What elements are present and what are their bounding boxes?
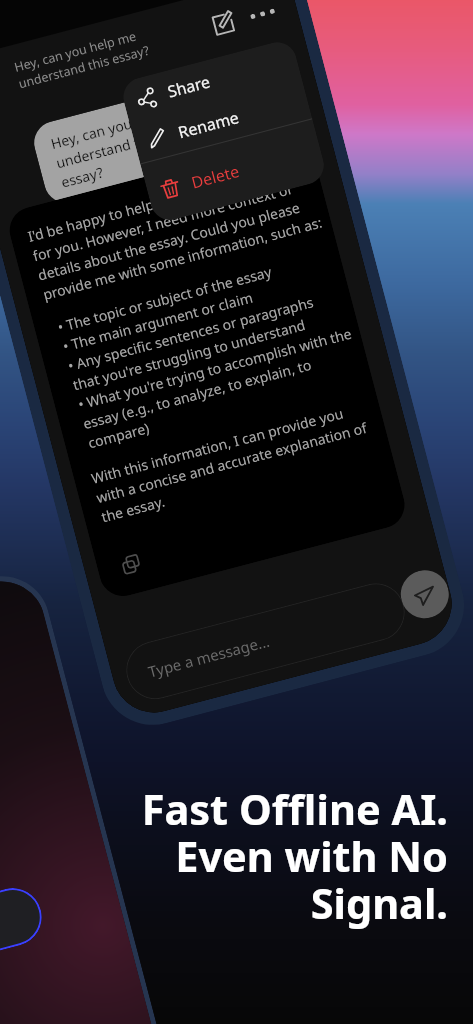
button[interactable]: Copy (117, 550, 144, 577)
staticText: Fast Offline AI. Even with No Signal. (141, 781, 448, 931)
button[interactable]: Rename (130, 79, 312, 163)
staticText: With this information, I can provide you… (89, 396, 384, 526)
button[interactable]: Share (119, 38, 302, 124)
staticText: Hey, can you help me understand this ess… (12, 25, 151, 91)
button[interactable]: More options (240, 0, 284, 36)
staticText: Hey, can you help me understand this ess… (49, 99, 200, 192)
button[interactable]: Hey, can you help me understand this ess… (29, 83, 220, 208)
staticText: Share (165, 70, 212, 103)
button[interactable]: I'd be happy to help break down the essa… (4, 134, 410, 601)
staticText: Rename (176, 106, 241, 143)
staticText: • The topic or subject of the essay • Th… (55, 246, 364, 452)
staticText: Delete (189, 160, 242, 194)
button[interactable]: Send (395, 565, 454, 623)
button[interactable]: Type a message... (120, 577, 411, 706)
staticText: Type a message... (146, 630, 272, 682)
staticText: I'd be happy to help break down the essa… (26, 154, 325, 304)
button[interactable]: Delete (140, 119, 328, 224)
button[interactable]: New chat (200, 2, 244, 46)
